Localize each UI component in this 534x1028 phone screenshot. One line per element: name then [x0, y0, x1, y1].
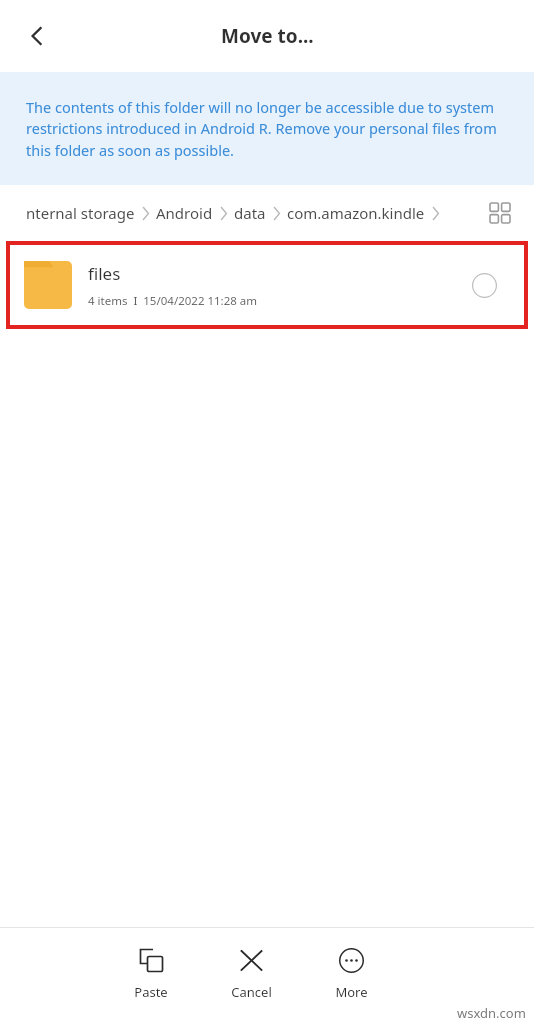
button[interactable]: More: [318, 928, 384, 1001]
staticText: nternal storage: [26, 203, 135, 223]
staticText: Paste: [134, 983, 168, 1001]
button[interactable]: Select files: [460, 261, 508, 309]
staticText: wsxdn.com: [457, 1004, 526, 1022]
button[interactable]: files: [10, 245, 524, 325]
staticText: 4 items I 15/04/2022 11:28 am: [88, 293, 258, 309]
staticText: com.amazon.kindle: [287, 203, 425, 223]
staticText: The contents of this folder will no long…: [26, 97, 512, 161]
staticText: Android: [156, 203, 213, 223]
button[interactable]: Back: [14, 13, 60, 59]
staticText: data: [234, 203, 266, 223]
button[interactable]: Paste: [118, 928, 184, 1001]
button[interactable]: Grid view: [480, 193, 520, 233]
button[interactable]: Cancel: [218, 928, 284, 1001]
button[interactable]: nternal storage: [26, 203, 480, 223]
staticText: Cancel: [231, 983, 272, 1001]
staticText: files: [88, 262, 121, 285]
staticText: Move to...: [221, 23, 314, 49]
staticText: More: [335, 983, 368, 1001]
